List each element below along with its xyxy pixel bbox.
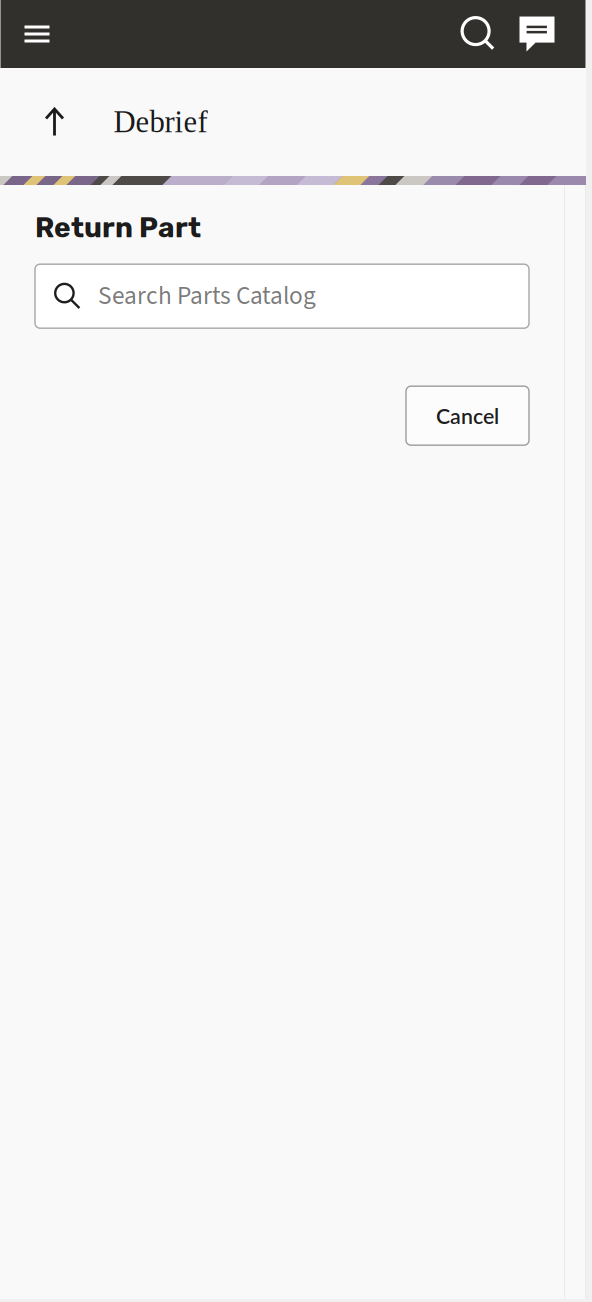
staticText: Cancel (436, 403, 499, 428)
button[interactable]: Menu (0, 0, 69, 68)
button[interactable]: Search (460, 0, 519, 68)
staticText: Debrief (113, 105, 207, 139)
staticText: Return Part (35, 211, 201, 244)
button[interactable]: Messages (519, 0, 585, 68)
button[interactable]: Cancel (406, 386, 529, 445)
staticText: Search Parts Catalog (98, 278, 316, 314)
button[interactable]: Back (0, 68, 113, 176)
